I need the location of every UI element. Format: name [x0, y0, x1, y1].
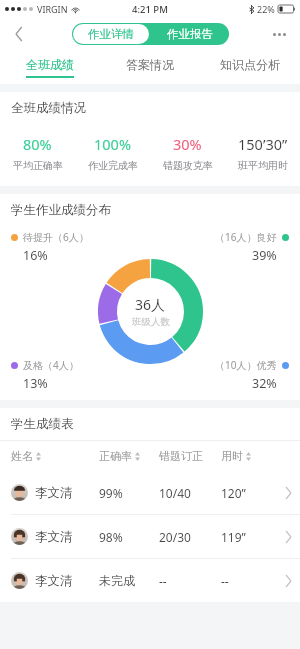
staticText: 姓名: [11, 449, 33, 463]
staticText: 学生成绩表: [11, 416, 74, 432]
button[interactable]: 80%: [0, 134, 75, 172]
staticText: 98%: [99, 529, 123, 545]
staticText: 150’30”: [238, 134, 288, 154]
staticText: 30%: [173, 134, 202, 154]
staticText: 班级人数: [132, 316, 170, 328]
button[interactable]: 答案情况: [100, 50, 200, 84]
staticText: 4:21 PM: [132, 3, 168, 16]
staticText: （10人）优秀: [215, 358, 277, 372]
staticText: 作业完成率: [88, 159, 138, 172]
staticText: --: [159, 573, 167, 589]
staticText: 未完成: [99, 573, 135, 588]
staticText: 知识点分析: [220, 57, 280, 72]
staticText: 99%: [99, 485, 123, 501]
staticText: 120”: [221, 485, 246, 501]
button[interactable]: 全班成绩: [0, 50, 100, 84]
staticText: 16%: [23, 247, 48, 264]
staticText: 及格（4人）: [23, 358, 79, 372]
staticText: 用时: [221, 449, 243, 463]
button[interactable]: 正确率: [99, 449, 159, 463]
staticText: 错题订正: [159, 449, 203, 463]
button[interactable]: 作业详情: [73, 24, 149, 44]
button[interactable]: 知识点分析: [200, 50, 300, 84]
staticText: 学生作业成绩分布: [11, 202, 111, 218]
button[interactable]: 待提升（6人）: [11, 230, 89, 264]
staticText: 错题攻克率: [163, 159, 213, 172]
staticText: 正确率: [99, 449, 132, 463]
staticText: 班平均用时: [238, 159, 288, 172]
button[interactable]: （16人）良好: [215, 230, 289, 264]
staticText: 36人: [135, 295, 166, 314]
staticText: 待提升（6人）: [23, 230, 89, 244]
button[interactable]: 150’30”: [225, 134, 300, 172]
staticText: 全班成绩: [26, 57, 74, 72]
staticText: 13%: [23, 375, 48, 392]
staticText: 作业详情: [88, 27, 134, 41]
staticText: 100%: [94, 134, 131, 154]
staticText: 119”: [221, 529, 246, 545]
staticText: 作业报告: [167, 27, 213, 41]
button[interactable]: 李文清: [0, 559, 300, 602]
button[interactable]: More options: [264, 19, 294, 49]
button[interactable]: 错题订正: [159, 449, 221, 463]
button[interactable]: 姓名: [11, 449, 99, 463]
staticText: 20/30: [159, 529, 191, 545]
staticText: 80%: [23, 134, 52, 154]
button[interactable]: 用时: [221, 449, 292, 463]
staticText: 李文清: [35, 573, 73, 589]
staticText: 32%: [252, 375, 277, 392]
button[interactable]: 及格（4人）: [11, 358, 79, 392]
button[interactable]: 作业报告: [150, 23, 229, 45]
button[interactable]: 100%: [75, 134, 150, 172]
staticText: 平均正确率: [13, 159, 63, 172]
button[interactable]: 李文清: [0, 515, 300, 558]
staticText: 答案情况: [126, 57, 174, 72]
staticText: VIRGIN: [37, 3, 68, 15]
button[interactable]: 30%: [150, 134, 225, 172]
button[interactable]: 李文清: [0, 471, 300, 514]
staticText: 22%: [257, 3, 275, 15]
staticText: --: [221, 573, 229, 589]
staticText: 10/40: [159, 485, 191, 501]
button[interactable]: （10人）优秀: [215, 358, 289, 392]
staticText: （16人）良好: [215, 230, 277, 244]
staticText: 全班成绩情况: [11, 100, 86, 116]
staticText: 李文清: [35, 529, 73, 545]
button[interactable]: Back: [4, 19, 34, 49]
staticText: 39%: [252, 247, 277, 264]
staticText: 李文清: [35, 485, 73, 501]
